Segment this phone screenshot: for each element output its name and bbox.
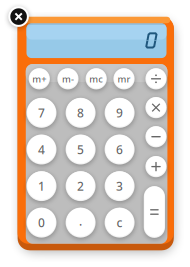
button[interactable]: Equals bbox=[140, 183, 168, 241]
staticText: m+ bbox=[32, 73, 46, 85]
button[interactable]: 2 bbox=[63, 168, 99, 204]
button[interactable]: Close bbox=[6, 4, 31, 29]
staticText: 7 bbox=[38, 105, 45, 121]
button[interactable]: 6 bbox=[102, 131, 138, 167]
button[interactable]: Add bbox=[142, 153, 170, 180]
button[interactable]: Multiply bbox=[142, 94, 170, 121]
button[interactable]: 9 bbox=[102, 95, 138, 131]
button[interactable]: m- bbox=[54, 65, 82, 92]
staticText: 6 bbox=[116, 141, 123, 157]
staticText: 9 bbox=[116, 105, 123, 121]
button[interactable]: 3 bbox=[102, 168, 138, 204]
staticText: 2 bbox=[77, 178, 84, 194]
staticText: 5 bbox=[77, 141, 84, 157]
staticText: 1 bbox=[38, 178, 45, 194]
staticText: c bbox=[117, 215, 123, 230]
staticText: mc bbox=[89, 73, 103, 85]
button[interactable]: c bbox=[102, 205, 138, 241]
button[interactable]: 5 bbox=[63, 131, 99, 167]
staticText: mr bbox=[117, 73, 130, 85]
staticText: 8 bbox=[77, 105, 84, 121]
button[interactable]: Subtract bbox=[142, 123, 170, 150]
button[interactable]: 4 bbox=[23, 131, 59, 167]
button[interactable]: 0 bbox=[23, 205, 59, 241]
button[interactable]: 1 bbox=[23, 168, 59, 204]
button[interactable]: 7 bbox=[23, 95, 59, 131]
button[interactable]: m+ bbox=[26, 65, 53, 92]
button[interactable]: 8 bbox=[63, 95, 99, 131]
staticText: 3 bbox=[116, 178, 123, 194]
staticText: 4 bbox=[38, 141, 45, 157]
button[interactable]: mc bbox=[82, 65, 110, 92]
staticText: m- bbox=[62, 73, 74, 85]
button[interactable]: Divide bbox=[142, 65, 170, 92]
button[interactable]: mr bbox=[110, 65, 138, 92]
staticText: . bbox=[79, 213, 82, 229]
staticText: 0 bbox=[38, 215, 45, 230]
button[interactable]: . bbox=[63, 205, 99, 241]
